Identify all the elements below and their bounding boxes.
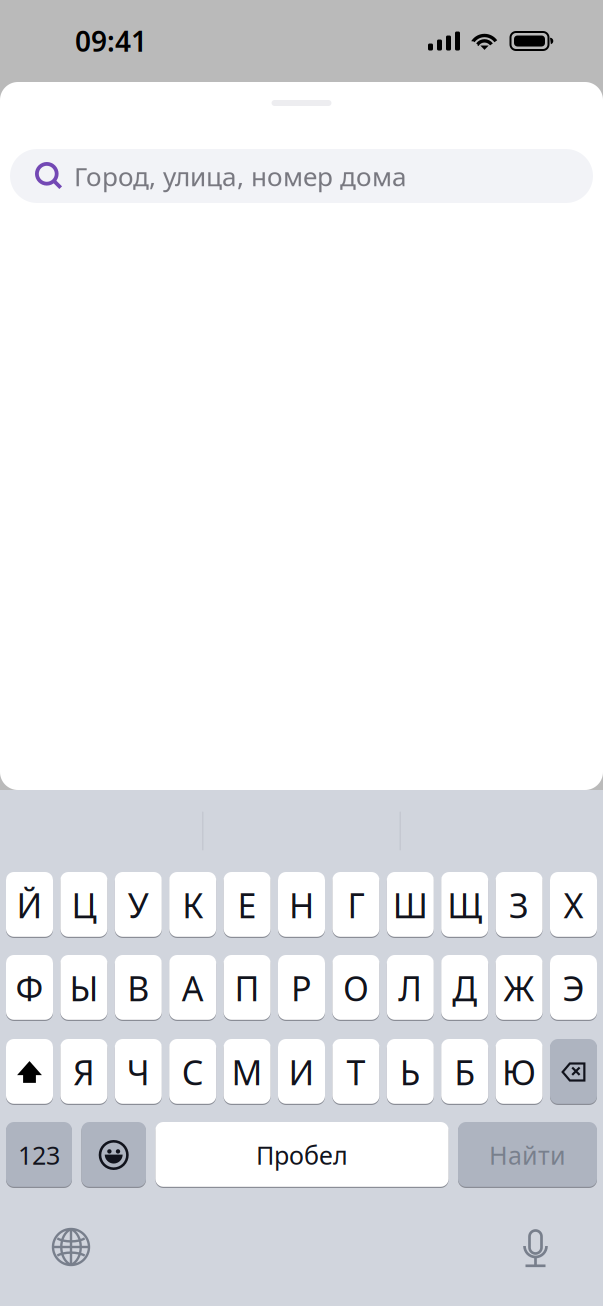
button[interactable]: У: [115, 872, 162, 938]
button[interactable]: Н: [278, 872, 325, 938]
button[interactable]: Ы: [60, 955, 107, 1021]
button[interactable]: 123: [6, 1122, 72, 1188]
button[interactable]: [550, 1039, 597, 1105]
button[interactable]: Й: [6, 872, 53, 938]
staticText: Л: [398, 965, 422, 1011]
staticText: Н: [289, 882, 314, 928]
staticText: И: [288, 1049, 314, 1095]
button[interactable]: Ж: [496, 955, 543, 1021]
button[interactable]: Ь: [387, 1039, 434, 1105]
staticText: Ы: [69, 965, 98, 1011]
staticText: Г: [347, 882, 364, 928]
staticText: Х: [563, 882, 583, 928]
staticText: У: [128, 882, 149, 928]
staticText: Ф: [15, 965, 43, 1011]
button[interactable]: С: [169, 1039, 216, 1105]
button[interactable]: З: [496, 872, 543, 938]
button[interactable]: Ч: [115, 1039, 162, 1105]
staticText: А: [182, 965, 204, 1011]
button[interactable]: Е: [224, 872, 271, 938]
staticText: Д: [452, 965, 477, 1011]
button[interactable]: Dictation: [522, 1226, 549, 1268]
staticText: Город, улица, номер дома: [74, 158, 407, 194]
button[interactable]: Город, улица, номер дома: [10, 149, 593, 203]
button[interactable]: Next keyboard: [52, 1228, 90, 1266]
staticText: М: [232, 1049, 263, 1095]
staticText: О: [343, 965, 369, 1011]
staticText: Е: [238, 882, 257, 928]
button[interactable]: А: [169, 955, 216, 1021]
staticText: П: [235, 965, 260, 1011]
staticText: Ч: [127, 1049, 150, 1095]
button[interactable]: М: [224, 1039, 271, 1105]
button[interactable]: Пробел: [155, 1122, 449, 1188]
staticText: Найти: [489, 1138, 566, 1172]
button[interactable]: Д: [441, 955, 488, 1021]
button[interactable]: Ф: [6, 955, 53, 1021]
button[interactable]: Х: [550, 872, 597, 938]
button[interactable]: Ш: [387, 872, 434, 938]
staticText: З: [509, 882, 529, 928]
staticText: Я: [73, 1049, 95, 1095]
button[interactable]: [6, 1039, 53, 1105]
staticText: Ж: [504, 965, 535, 1011]
staticText: 123: [18, 1138, 60, 1172]
staticText: Э: [562, 965, 584, 1011]
button[interactable]: Э: [550, 955, 597, 1021]
staticText: Щ: [447, 882, 482, 928]
staticText: Т: [346, 1049, 365, 1095]
staticText: Р: [291, 965, 312, 1011]
button[interactable]: Я: [60, 1039, 107, 1105]
button[interactable]: Щ: [441, 872, 488, 938]
staticText: Ш: [393, 882, 428, 928]
button[interactable]: К: [169, 872, 216, 938]
staticText: С: [182, 1049, 204, 1095]
staticText: Б: [454, 1049, 475, 1095]
button[interactable]: Найти: [458, 1122, 597, 1188]
staticText: К: [182, 882, 203, 928]
button[interactable]: [81, 1122, 146, 1188]
button[interactable]: Л: [387, 955, 434, 1021]
staticText: Ц: [71, 882, 96, 928]
staticText: Ю: [502, 1049, 536, 1095]
button[interactable]: Ю: [496, 1039, 543, 1105]
button[interactable]: Р: [278, 955, 325, 1021]
button[interactable]: Г: [332, 872, 379, 938]
button[interactable]: П: [224, 955, 271, 1021]
button[interactable]: О: [332, 955, 379, 1021]
button[interactable]: Т: [332, 1039, 379, 1105]
staticText: 09:41: [75, 22, 147, 60]
button[interactable]: Ц: [60, 872, 107, 938]
staticText: Й: [16, 882, 42, 928]
button[interactable]: Б: [441, 1039, 488, 1105]
staticText: Ь: [400, 1049, 421, 1095]
button[interactable]: И: [278, 1039, 325, 1105]
staticText: В: [127, 965, 149, 1011]
button[interactable]: В: [115, 955, 162, 1021]
staticText: Пробел: [256, 1138, 348, 1172]
